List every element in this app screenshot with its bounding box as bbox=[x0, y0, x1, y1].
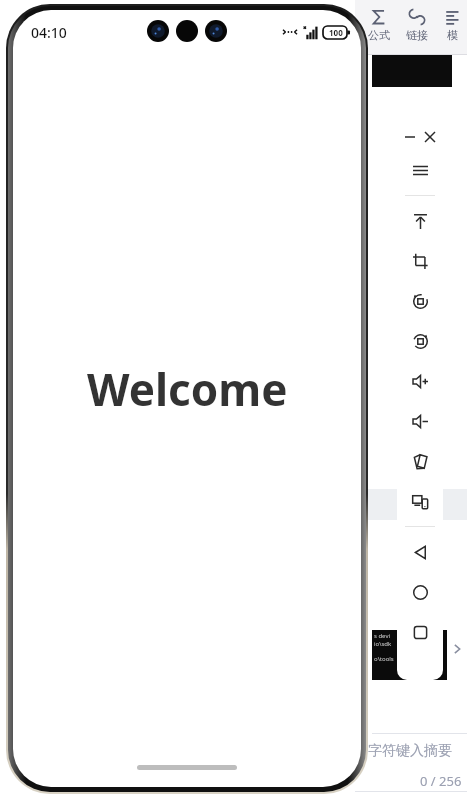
button[interactable]: Screenshot bbox=[397, 241, 443, 281]
staticText: 模 bbox=[447, 28, 458, 42]
button[interactable]: Multi display bbox=[397, 481, 443, 521]
button[interactable]: Fold bbox=[397, 441, 443, 481]
staticText: 100 bbox=[329, 27, 343, 38]
button[interactable]: Recents bbox=[397, 612, 443, 652]
staticText: 字符键入摘要 bbox=[368, 742, 452, 760]
staticText: s devi bbox=[374, 632, 390, 640]
button[interactable]: Power bbox=[397, 201, 443, 241]
button[interactable]: Expand bbox=[448, 640, 466, 658]
button[interactable]: Minimize bbox=[402, 129, 418, 145]
staticText: 04:10 bbox=[31, 23, 67, 42]
button[interactable]: Volume down bbox=[397, 401, 443, 441]
staticText: 0 / 256 bbox=[420, 772, 462, 790]
button[interactable]: Volume up bbox=[397, 361, 443, 401]
staticText: Welcome bbox=[87, 359, 288, 419]
button[interactable]: Welcome bbox=[13, 10, 361, 787]
staticText: 链接 bbox=[406, 28, 428, 42]
staticText: 公式 bbox=[368, 28, 390, 42]
button[interactable]: Rotate left bbox=[397, 281, 443, 321]
button[interactable]: Rotate right bbox=[397, 321, 443, 361]
button[interactable]: 公式 bbox=[360, 4, 398, 50]
button[interactable]: Back bbox=[397, 532, 443, 572]
button[interactable]: Close bbox=[422, 129, 438, 145]
button[interactable]: Menu bbox=[397, 150, 443, 190]
button[interactable]: Home bbox=[397, 572, 443, 612]
staticText: io\sdk bbox=[374, 640, 392, 648]
staticText: o\tools bbox=[374, 655, 394, 663]
button[interactable]: Home gesture bbox=[137, 765, 237, 770]
button[interactable]: 链接 bbox=[398, 4, 436, 50]
button[interactable]: 模 bbox=[436, 4, 467, 50]
